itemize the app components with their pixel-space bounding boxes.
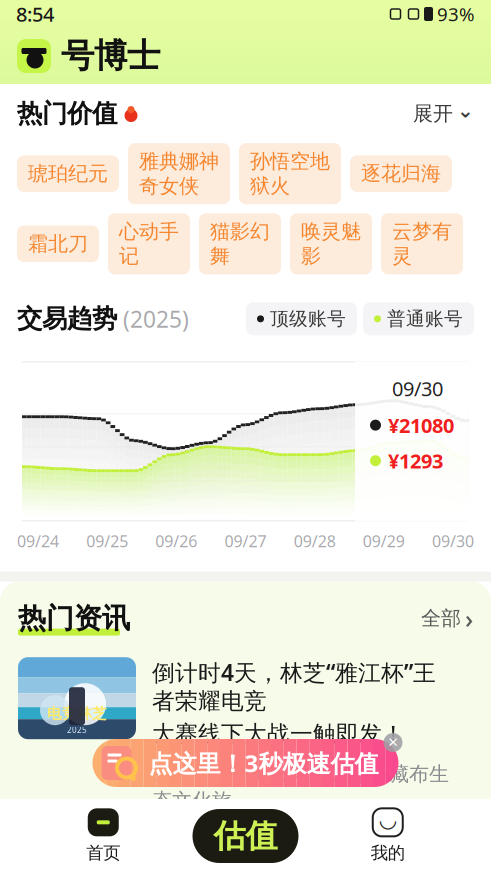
staticText: 8:54 [16, 1, 54, 27]
button[interactable]: ◡ [298, 808, 477, 864]
staticText: 顶级账号 [270, 307, 346, 330]
button[interactable]: 逐花归海 [350, 155, 452, 192]
staticText: 雅典娜神奇女侠 [139, 149, 219, 198]
button[interactable]: 猫影幻舞 [199, 213, 281, 274]
staticText: ◡ [380, 807, 396, 831]
button[interactable]: 首页 [14, 808, 192, 864]
staticText: ¥1293 [388, 447, 443, 474]
staticText: 09/30 [432, 530, 474, 551]
staticText: (2025) [123, 304, 189, 334]
staticText: › [465, 602, 473, 635]
button[interactable]: 雅典娜神奇女侠 [128, 143, 230, 204]
staticText: ¥21080 [388, 412, 454, 438]
staticText: 93% [437, 2, 475, 26]
staticText: 号博士 [61, 35, 160, 76]
button[interactable]: 琥珀纪元 [17, 155, 119, 192]
button[interactable]: 关闭 [383, 733, 402, 752]
staticText: 09/30 [392, 375, 443, 402]
staticText: 倒计时4天，林芝“雅江杯”王者荣耀电竞 [152, 657, 436, 715]
staticText: 热门价值 [17, 98, 117, 129]
staticText: 首页 [86, 842, 120, 864]
button[interactable]: 《第五人格》新赛季全新上... [0, 832, 491, 873]
staticText: 《第五人格》新赛季全新上... [35, 845, 305, 873]
staticText: 09/26 [155, 530, 197, 551]
staticText: 09/25 [86, 530, 128, 551]
staticText: 电竞林芝 [47, 705, 107, 723]
staticText: 普通账号 [387, 307, 463, 330]
button[interactable]: 点这里！3秒极速估值 [92, 739, 398, 787]
staticText: 热门资讯 [18, 601, 130, 636]
staticText: 心动手记 [119, 219, 179, 268]
staticText: 琥珀纪元 [28, 161, 108, 186]
staticText: 估值 [213, 816, 277, 856]
staticText: ✕ [387, 735, 398, 750]
button[interactable]: 云梦有灵 [381, 213, 463, 274]
staticText: 交易趋势 [17, 303, 117, 334]
staticText: 点这里！3秒极速估值 [148, 747, 378, 779]
staticText: 唤灵魅影 [301, 219, 361, 268]
staticText: 09/29 [363, 530, 405, 551]
staticText: 2025 [67, 725, 87, 735]
staticText: 9月25日，2025年林芝雅鲁藏布生态文化旅... [152, 760, 449, 813]
staticText: 大赛线下大战一触即发！ [152, 720, 405, 748]
staticText: 云梦有灵 [392, 219, 452, 268]
button[interactable]: 霜北刀 [17, 225, 99, 262]
staticText: 逐花归海 [361, 161, 441, 186]
button[interactable]: 估值 [192, 809, 298, 863]
staticText: 猫影幻舞 [210, 219, 270, 268]
staticText: 我的 [371, 842, 405, 864]
staticText: 霜北刀 [28, 231, 88, 256]
button[interactable]: 普通账号 [363, 302, 474, 335]
staticText: ⌄ [457, 99, 474, 122]
button[interactable]: 心动手记 [108, 213, 190, 274]
staticText: 孙悟空地狱火 [250, 149, 330, 198]
staticText: 09/28 [294, 530, 336, 551]
staticText: 展开 [413, 101, 453, 126]
button[interactable]: 唤灵魅影 [290, 213, 372, 274]
button[interactable]: 电竞林芝 [0, 635, 491, 831]
staticText: 09/24 [17, 530, 59, 551]
button[interactable]: 顶级账号 [246, 302, 357, 335]
button[interactable]: 孙悟空地狱火 [239, 143, 341, 204]
staticText: 09/27 [224, 530, 266, 551]
button[interactable]: 全部 [421, 602, 473, 635]
button[interactable]: 展开 [413, 101, 474, 126]
staticText: 全部 [421, 606, 461, 631]
